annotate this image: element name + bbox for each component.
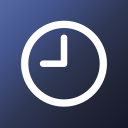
button[interactable]: Clock: [0, 0, 128, 128]
